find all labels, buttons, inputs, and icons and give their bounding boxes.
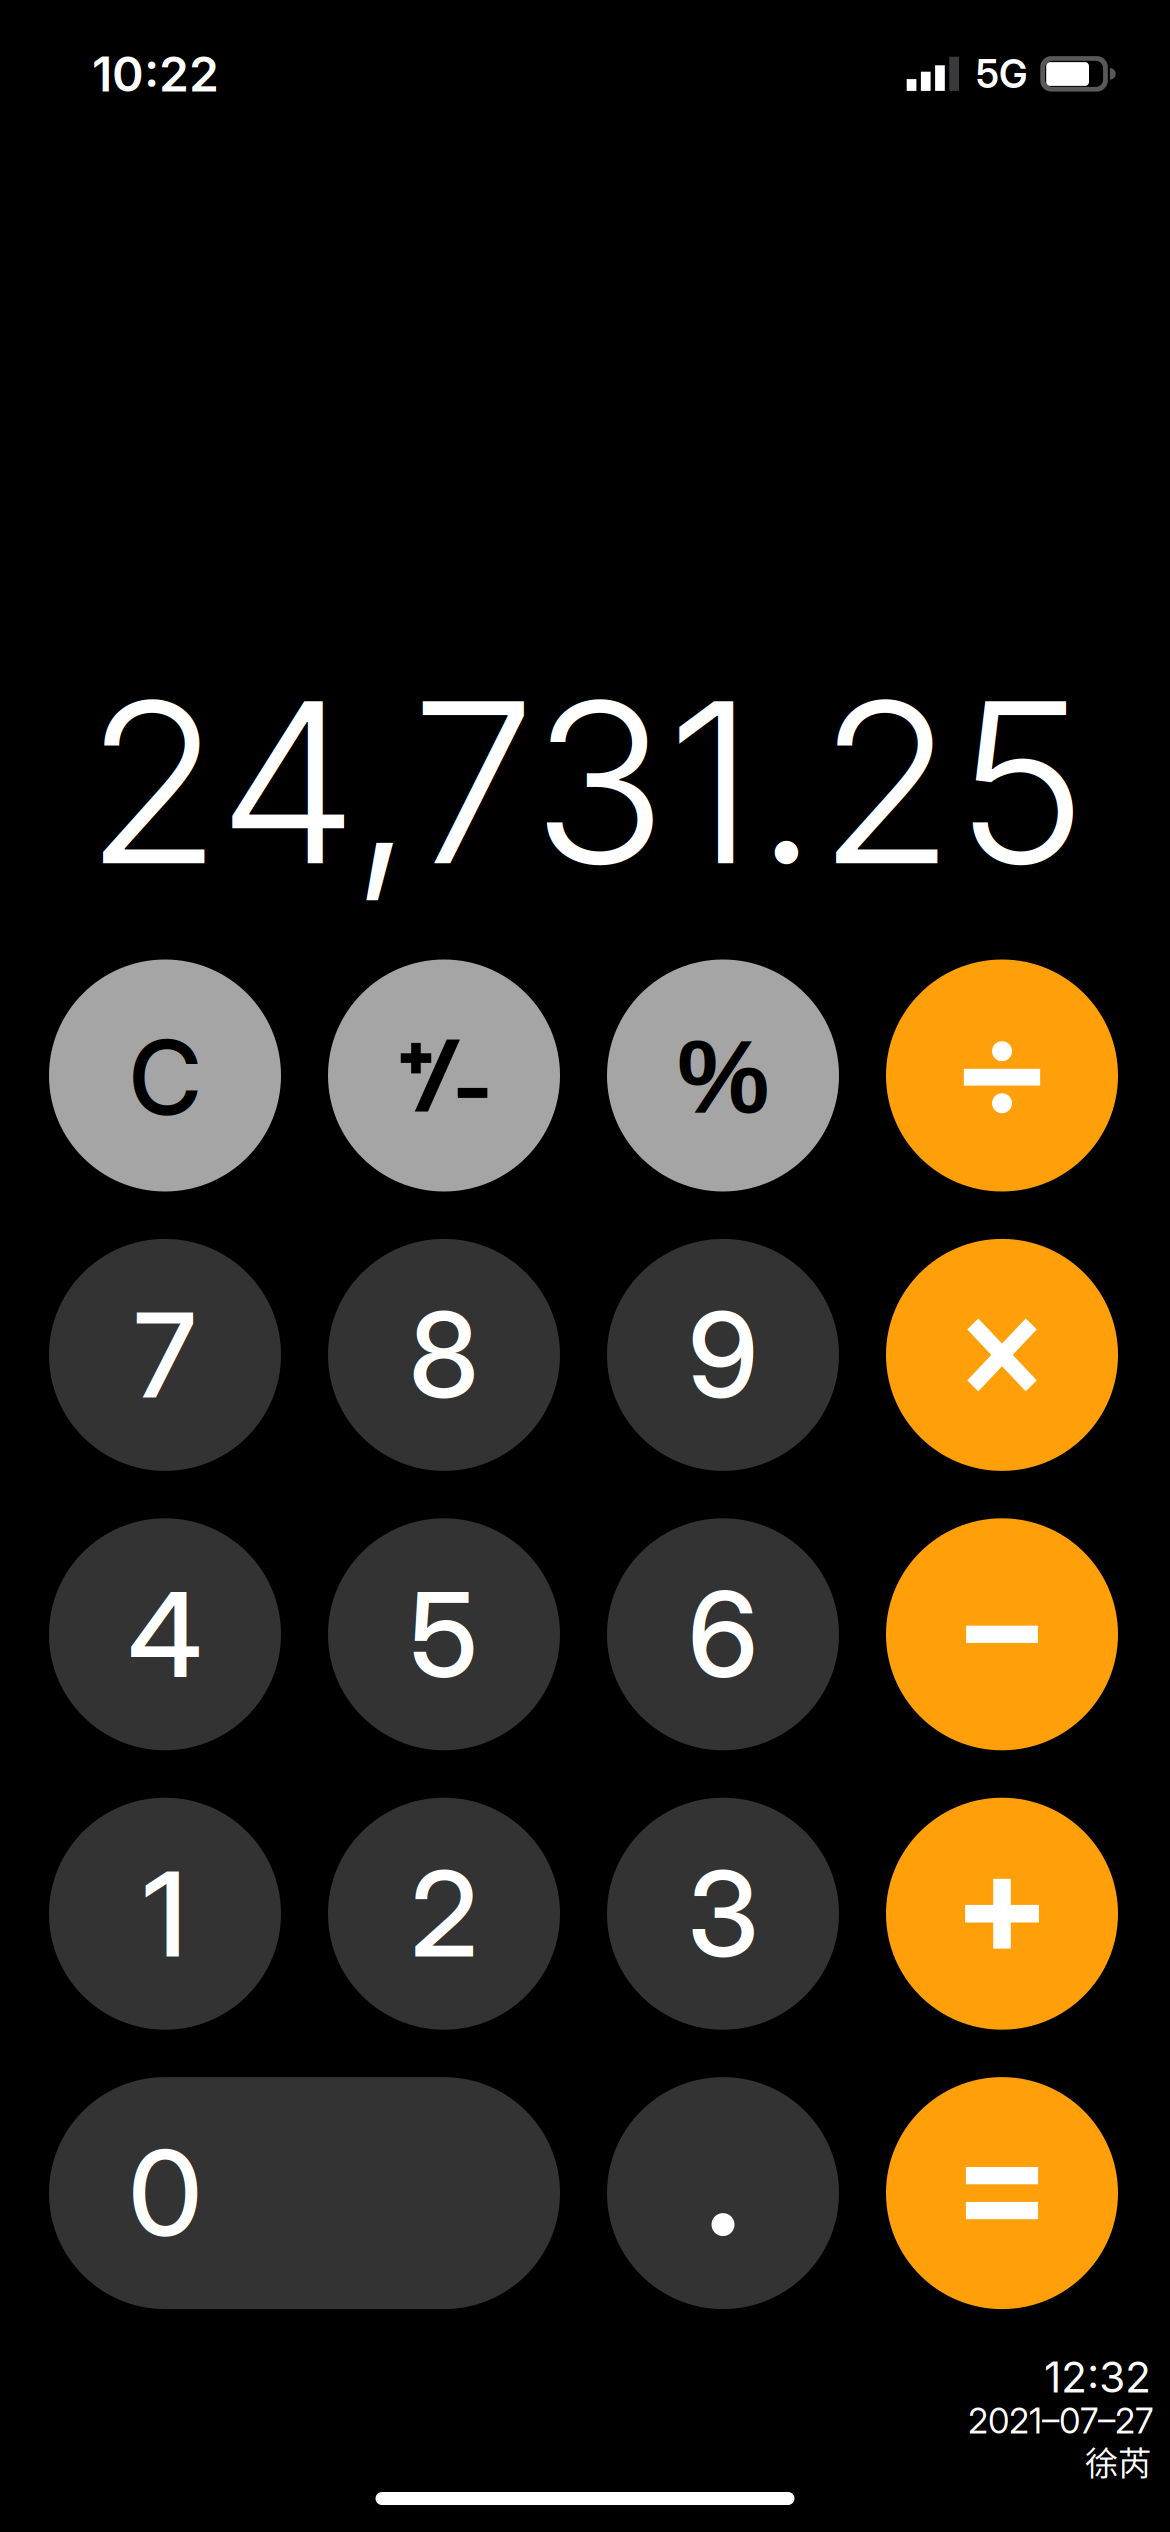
button[interactable]: 7 <box>49 1239 281 1471</box>
button[interactable]: 9 <box>607 1239 839 1471</box>
staticText: % <box>677 1018 769 1135</box>
staticText: C <box>127 1015 202 1140</box>
staticText: 24,731.25 <box>85 648 1087 917</box>
button[interactable]: 3 <box>607 1798 839 2030</box>
button[interactable]: Divide <box>886 959 1118 1191</box>
button[interactable]: Multiply <box>886 1239 1118 1471</box>
staticText: 3 <box>687 1843 758 1985</box>
staticText: 0 <box>128 2122 201 2264</box>
staticText: 5G <box>976 51 1027 97</box>
button[interactable]: Percent <box>607 959 839 1191</box>
button[interactable]: Decimal point <box>607 2077 839 2309</box>
button[interactable]: Minus <box>886 1518 1118 1750</box>
button[interactable]: 2 <box>328 1798 560 2030</box>
button[interactable]: Plus minus <box>328 959 560 1191</box>
staticText: 1 <box>143 1843 187 1985</box>
staticText: 5 <box>409 1563 478 1705</box>
button[interactable]: 4 <box>49 1518 281 1750</box>
staticText: 7 <box>134 1284 196 1426</box>
staticText: 2 <box>410 1843 477 1985</box>
button[interactable]: Plus <box>886 1798 1118 2030</box>
button[interactable]: 8 <box>328 1239 560 1471</box>
staticText: 9 <box>688 1284 758 1426</box>
button[interactable]: Zero <box>49 2077 560 2309</box>
staticText: 4 <box>128 1563 202 1705</box>
staticText: 6 <box>688 1563 758 1705</box>
button[interactable]: Clear <box>49 959 281 1191</box>
button[interactable]: 5 <box>328 1518 560 1750</box>
button[interactable]: 6 <box>607 1518 839 1750</box>
button[interactable]: 1 <box>49 1798 281 2030</box>
button[interactable]: Equals <box>886 2077 1118 2309</box>
staticText: 12:32 <box>1044 2351 1151 2403</box>
staticText: 2021–07–27 <box>968 2400 1153 2442</box>
staticText: 徐芮 <box>1085 2437 1151 2485</box>
staticText: 10:22 <box>92 45 219 103</box>
staticText: 8 <box>409 1284 479 1426</box>
